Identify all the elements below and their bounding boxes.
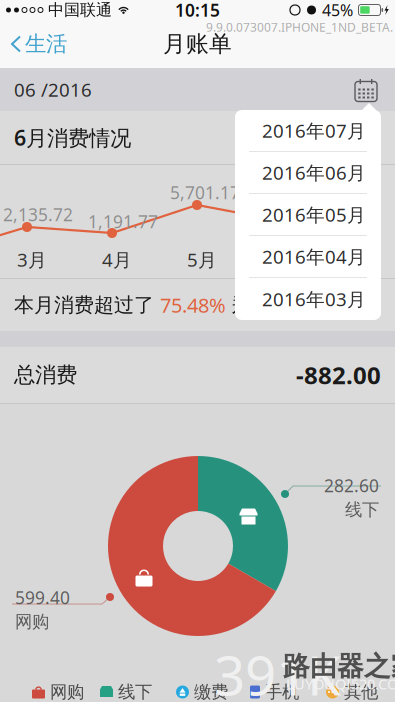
button[interactable]: 生活 (0, 22, 79, 66)
staticText: 45% (322, 0, 353, 21)
staticText: 06 /2016 (14, 77, 92, 102)
staticText: 4月 (102, 247, 132, 272)
staticText: 9.9.0.073007.IPHONE_1ND_BETA. (206, 19, 393, 35)
staticText: 75.48% (160, 292, 226, 318)
staticText: 599.40 (15, 586, 70, 609)
button[interactable]: 2016年03月 (235, 278, 381, 320)
staticText: 线下 (345, 499, 379, 520)
button[interactable]: 缴费 (176, 682, 228, 702)
staticText: 2016年03月 (262, 287, 366, 311)
button[interactable]: Choose month (351, 73, 381, 105)
button[interactable]: 网购 (32, 682, 84, 702)
staticText: 2,135.72 (3, 203, 73, 226)
staticText: 生活 (25, 31, 67, 57)
button[interactable]: 2016年05月 (235, 194, 381, 235)
staticText: 2016年06月 (262, 160, 366, 185)
staticText: 391K (214, 638, 341, 702)
staticText: 网购 (15, 611, 49, 632)
staticText: 2016年05月 (262, 202, 366, 227)
staticText: 2016年07月 (262, 118, 366, 143)
staticText: 282.60 (324, 474, 379, 497)
staticText: 5,701.17 (170, 181, 240, 204)
staticText: 1,191.77 (88, 210, 158, 233)
staticText: 网购 (50, 681, 84, 702)
staticText: 郑州市的用户 (226, 293, 352, 317)
button[interactable]: 线下 (100, 682, 152, 702)
staticText: 10:15 (175, 0, 220, 21)
staticText: 2016年04月 (262, 244, 366, 269)
staticText: 3月 (17, 247, 47, 272)
staticText: 手机 (265, 681, 299, 702)
staticText: 路由器之家 (283, 650, 395, 683)
staticText: LUYOUQI520.COM (286, 674, 395, 693)
staticText: 中国联通 (43, 0, 117, 20)
staticText: 6月消费情况 (14, 123, 131, 152)
staticText: 5月 (187, 247, 217, 272)
button[interactable]: 2016年04月 (235, 236, 381, 277)
button[interactable]: 2016年07月 (235, 110, 381, 151)
staticText: 其他 (344, 681, 378, 702)
staticText: 总消费 (14, 362, 77, 388)
button[interactable]: 2016年06月 (235, 152, 381, 193)
button[interactable]: 其他 (326, 682, 378, 702)
staticText: 本月消费超过了 (14, 293, 160, 317)
staticText: -882.00 (296, 359, 381, 391)
button[interactable]: 手机 (247, 682, 299, 702)
staticText: 月账单 (163, 30, 232, 58)
staticText: 线下 (118, 681, 152, 702)
staticText: 缴费 (194, 681, 228, 702)
